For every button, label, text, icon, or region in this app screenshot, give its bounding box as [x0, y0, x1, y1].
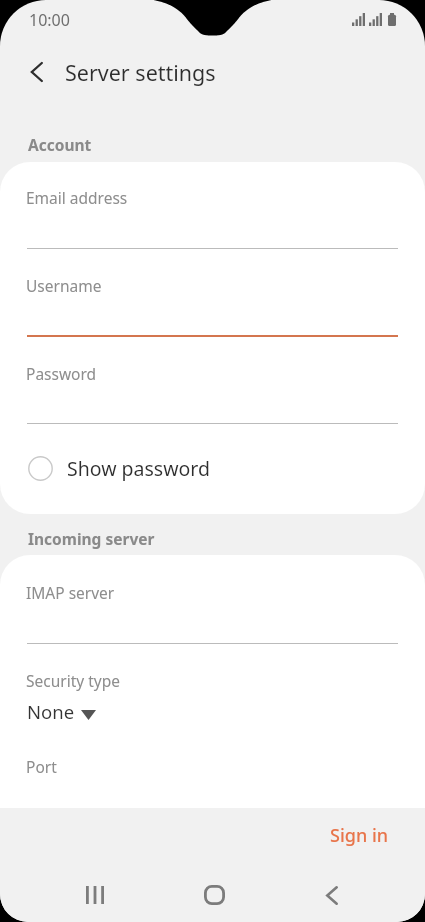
staticText: Incoming server: [28, 528, 155, 549]
button[interactable]: [0, 340, 425, 428]
staticText: Username: [26, 275, 102, 296]
button[interactable]: [0, 252, 425, 340]
button[interactable]: [0, 647, 425, 727]
staticText: Sign in: [330, 823, 389, 848]
staticText: Server settings: [65, 58, 216, 87]
button[interactable]: Back: [16, 51, 58, 93]
staticText: Password: [26, 363, 97, 384]
staticText: Account: [28, 134, 92, 155]
staticText: IMAP server: [26, 582, 115, 603]
staticText: None: [27, 699, 75, 724]
staticText: Port: [26, 756, 57, 777]
button[interactable]: Recent apps: [55, 871, 135, 919]
button[interactable]: [0, 557, 425, 647]
staticText: Show password: [67, 455, 210, 482]
button[interactable]: Show password: [0, 442, 425, 494]
staticText: 10:00: [29, 9, 70, 31]
staticText: Security type: [26, 670, 120, 691]
button[interactable]: Sign in: [312, 814, 407, 857]
button[interactable]: Back: [292, 871, 372, 919]
staticText: Email address: [26, 187, 128, 208]
button[interactable]: [0, 164, 425, 248]
button[interactable]: [0, 735, 425, 795]
button[interactable]: Home: [174, 871, 254, 919]
